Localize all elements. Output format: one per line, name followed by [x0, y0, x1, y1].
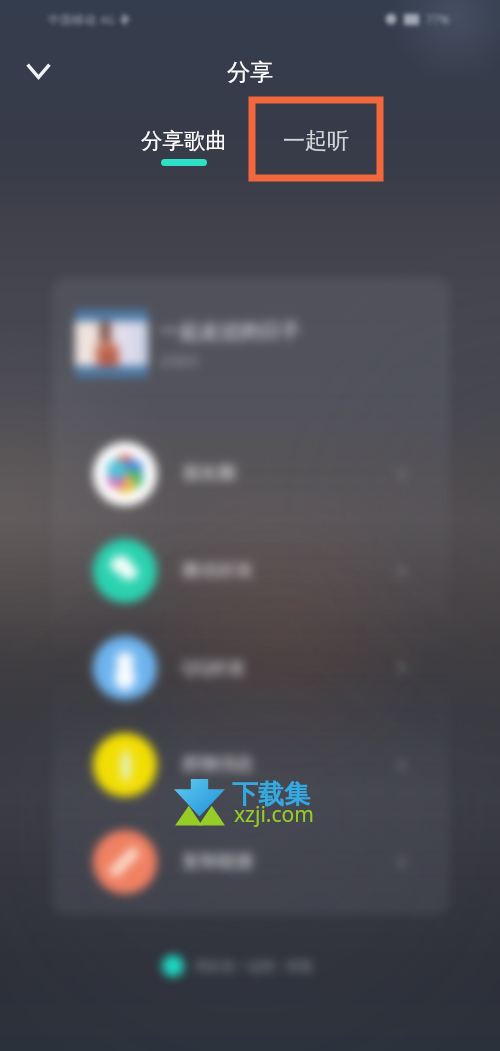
staticText: 一起走过的日子 [160, 319, 300, 344]
button[interactable]: QQ好友 [52, 619, 450, 716]
button[interactable]: 复制链接 [52, 813, 450, 910]
staticText: 下载集 [232, 778, 310, 811]
staticText: 中国移动 [48, 12, 96, 27]
staticText: 刘德华 [160, 353, 199, 369]
button[interactable]: 微信好友 [52, 522, 450, 619]
staticText: 分享 [227, 58, 273, 87]
staticText: QQ好友 [182, 655, 247, 680]
staticText: 和好友一起听 · 听歌 [195, 957, 314, 975]
staticText: 分享歌曲 [141, 127, 227, 154]
button[interactable]: 和好友一起听 · 听歌 [162, 955, 314, 977]
staticText: xzji.com [234, 800, 314, 829]
staticText: 4G [100, 12, 115, 27]
staticText: 朋友圈 [182, 462, 236, 485]
staticText: 一起听 [283, 127, 349, 155]
staticText: 复制链接 [182, 850, 254, 873]
staticText: 群聊消息 [182, 753, 254, 776]
button[interactable]: 分享歌曲 [129, 123, 239, 170]
button[interactable]: 群聊消息 [52, 716, 450, 813]
button[interactable]: 一起听 [271, 123, 361, 159]
button[interactable]: 朋友圈 [52, 425, 450, 522]
staticText: 77% [426, 11, 450, 27]
button[interactable]: Close [14, 47, 62, 95]
staticText: 微信好友 [182, 559, 254, 582]
